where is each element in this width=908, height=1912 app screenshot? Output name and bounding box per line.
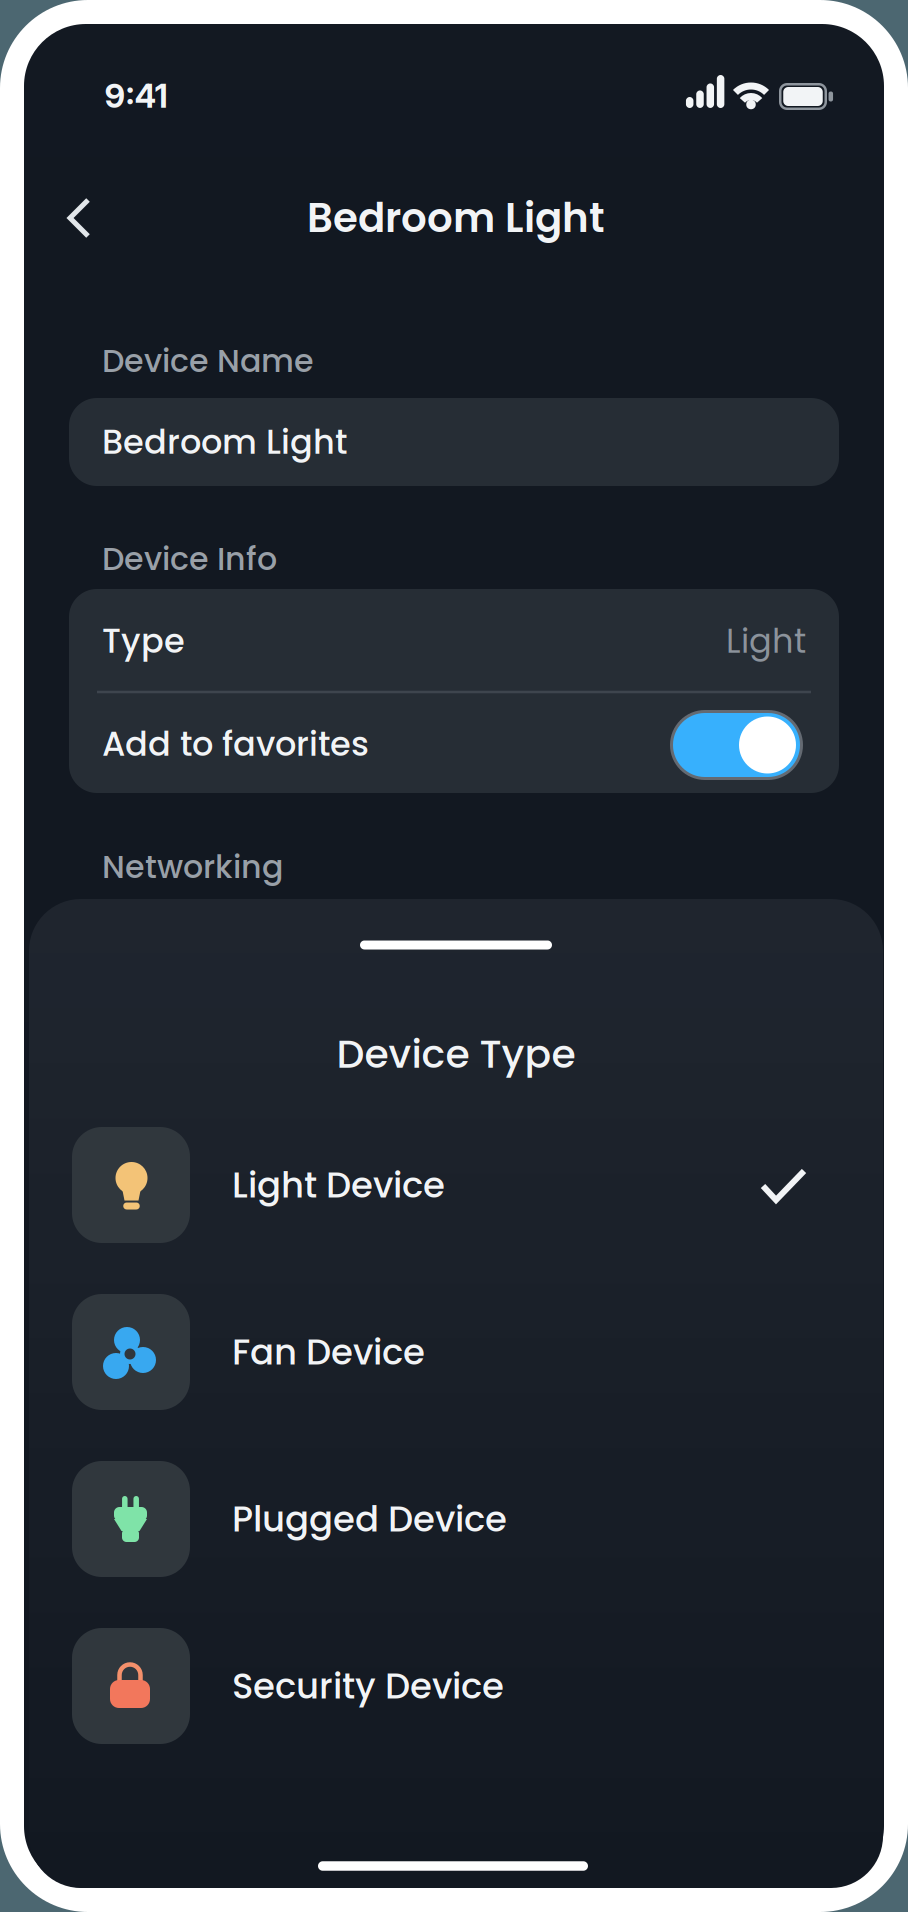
staticText: Light Device bbox=[232, 1160, 445, 1210]
staticText: 9:41 bbox=[104, 76, 167, 116]
staticText: Type bbox=[102, 617, 185, 664]
button[interactable]: Bedroom Light bbox=[69, 398, 839, 486]
staticText: Device Info bbox=[102, 537, 277, 581]
staticText: Fan Device bbox=[232, 1327, 425, 1377]
button[interactable]: Light Device bbox=[72, 1127, 836, 1243]
staticText: Device Name bbox=[102, 339, 314, 383]
button[interactable]: Back bbox=[47, 186, 111, 250]
staticText: Networking bbox=[102, 845, 283, 889]
staticText: Bedroom Light bbox=[102, 418, 347, 465]
staticText: Bedroom Light bbox=[307, 190, 605, 246]
staticText: Plugged Device bbox=[232, 1494, 507, 1544]
button[interactable]: Add to favorites bbox=[670, 710, 803, 780]
staticText: Add to favorites bbox=[102, 720, 369, 767]
button[interactable]: Plugged Device bbox=[72, 1461, 836, 1577]
button[interactable]: Security Device bbox=[72, 1628, 836, 1744]
button[interactable]: Type bbox=[102, 591, 806, 691]
staticText: Device Type bbox=[336, 1026, 575, 1081]
staticText: Light bbox=[726, 617, 806, 664]
button[interactable]: Fan Device bbox=[72, 1294, 836, 1410]
staticText: Security Device bbox=[232, 1661, 504, 1711]
